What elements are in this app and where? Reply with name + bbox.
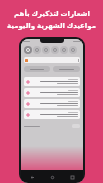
staticText: مواعيدك الشهرية واليومية <box>7 21 96 31</box>
button[interactable] <box>24 66 50 72</box>
button[interactable]: Recents <box>69 174 75 180</box>
button[interactable]: Add reminder <box>33 46 41 54</box>
button[interactable]: Note <box>60 46 68 54</box>
button[interactable] <box>24 124 80 128</box>
button[interactable]: Back <box>29 174 35 180</box>
staticText: اشعارات لتذكيرك بأهم <box>14 9 90 19</box>
button[interactable] <box>24 77 80 86</box>
button[interactable]: More <box>69 46 77 54</box>
button[interactable] <box>24 88 80 97</box>
button[interactable]: Filter <box>24 46 32 54</box>
button[interactable]: Calendar <box>42 46 50 54</box>
button[interactable] <box>24 99 80 108</box>
button[interactable] <box>53 66 80 72</box>
button[interactable]: Home <box>49 174 55 180</box>
button[interactable]: Alarm <box>51 46 59 54</box>
button[interactable] <box>24 57 80 63</box>
button[interactable] <box>24 110 80 119</box>
